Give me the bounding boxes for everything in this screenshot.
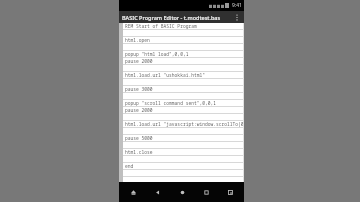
button[interactable] bbox=[119, 44, 244, 50]
button[interactable]: More options bbox=[233, 11, 241, 23]
button[interactable]: Back bbox=[147, 182, 167, 202]
button[interactable]: REM Start of BASIC Program bbox=[119, 23, 244, 29]
staticText: end bbox=[125, 163, 134, 169]
staticText: pause 5000 bbox=[125, 135, 153, 141]
button[interactable] bbox=[119, 177, 244, 182]
staticText: BASIC Program Editor - t.modtest.bas bbox=[122, 14, 233, 21]
button[interactable]: Recents bbox=[220, 182, 240, 202]
button[interactable] bbox=[119, 93, 244, 99]
button[interactable]: Home circle bbox=[172, 182, 192, 202]
button[interactable]: pause 2000 bbox=[119, 58, 244, 64]
button[interactable]: html.load.url "ushokkai.html" bbox=[119, 72, 244, 78]
button[interactable] bbox=[119, 79, 244, 85]
button[interactable]: popup "html load",0,0,1 bbox=[119, 51, 244, 57]
button[interactable] bbox=[119, 128, 244, 134]
button[interactable]: Square bbox=[196, 182, 216, 202]
button[interactable]: pause 3000 bbox=[119, 86, 244, 92]
staticText: REM Start of BASIC Program bbox=[125, 23, 197, 29]
button[interactable]: end bbox=[119, 163, 244, 169]
button[interactable] bbox=[119, 142, 244, 148]
staticText: 9:41 bbox=[232, 2, 242, 9]
button[interactable] bbox=[119, 156, 244, 162]
staticText: html.load.url "ushokkai.html" bbox=[125, 72, 205, 78]
button[interactable]: html.close bbox=[119, 149, 244, 155]
button[interactable]: Home bbox=[123, 182, 143, 202]
button[interactable]: pause 2000 bbox=[119, 107, 244, 113]
button[interactable]: html.open bbox=[119, 37, 244, 43]
staticText: popup "html load",0,0,1 bbox=[125, 51, 189, 57]
button[interactable] bbox=[119, 65, 244, 71]
button[interactable]: pause 5000 bbox=[119, 135, 244, 141]
staticText: html.load.url "javascript:window.scrollT… bbox=[125, 121, 244, 127]
button[interactable] bbox=[119, 114, 244, 120]
staticText: pause 2000 bbox=[125, 58, 153, 64]
staticText: html.open bbox=[125, 37, 150, 43]
button[interactable] bbox=[119, 30, 244, 36]
staticText: pause 2000 bbox=[125, 107, 153, 113]
button[interactable]: html.load.url "javascript:window.scrollT… bbox=[119, 121, 244, 127]
button[interactable]: popup "scroll command sent",0,0,1 bbox=[119, 100, 244, 106]
staticText: html.close bbox=[125, 149, 153, 155]
staticText: pause 3000 bbox=[125, 86, 153, 92]
staticText: popup "scroll command sent",0,0,1 bbox=[125, 100, 216, 106]
button[interactable] bbox=[119, 170, 244, 176]
